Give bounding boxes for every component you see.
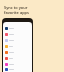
button[interactable]: Chat [3, 61, 32, 67]
button[interactable]: Drive [3, 67, 32, 72]
button[interactable]: Calendar [3, 25, 32, 31]
button[interactable]: Mail [3, 43, 32, 49]
staticText: Sync to your [4, 5, 28, 10]
button[interactable]: Music [3, 31, 32, 37]
button[interactable]: Photos [3, 55, 32, 61]
button[interactable]: Tasks [3, 49, 32, 55]
staticText: favorite apps [4, 10, 29, 15]
button[interactable]: Notes [3, 37, 32, 43]
